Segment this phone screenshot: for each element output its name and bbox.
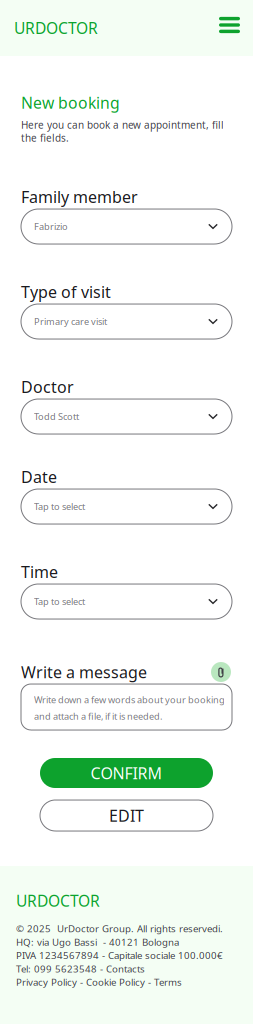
- button[interactable]: Fabrizio: [21, 209, 232, 244]
- staticText: Here you can book a new appointment, fil…: [21, 118, 224, 132]
- staticText: Todd Scott: [34, 410, 79, 423]
- staticText: Tel: 099 5623548 - Contacts: [16, 962, 145, 975]
- button[interactable]: URDOCTOR: [14, 17, 98, 39]
- staticText: Write a message: [21, 661, 147, 683]
- staticText: CONFIRM: [90, 762, 162, 784]
- button[interactable]: Primary care visit: [21, 304, 232, 339]
- staticText: Doctor: [21, 376, 74, 398]
- staticText: Write down a few words about your bookin…: [34, 693, 225, 706]
- staticText: Tap to select: [34, 595, 85, 608]
- staticText: Family member: [21, 186, 138, 208]
- button[interactable]: EDIT: [40, 800, 213, 831]
- button[interactable]: Tap to select: [21, 489, 232, 524]
- staticText: Date: [21, 466, 57, 488]
- staticText: New booking: [21, 92, 120, 113]
- staticText: URDOCTOR: [16, 890, 100, 911]
- staticText: PIVA 1234567894 - Capitale sociale 100.0…: [16, 949, 223, 962]
- button[interactable]: CONFIRM: [40, 758, 213, 788]
- staticText: EDIT: [109, 805, 144, 826]
- staticText: Tap to select: [34, 500, 85, 513]
- staticText: Primary care visit: [34, 315, 107, 328]
- button[interactable]: Tap to select: [21, 584, 232, 619]
- staticText: HQ: via Ugo Bassi - 40121 Bologna: [16, 935, 179, 949]
- button[interactable]: Todd Scott: [21, 399, 232, 434]
- button[interactable]: Privacy Policy - Cookie Policy - Terms: [16, 975, 182, 989]
- staticText: Type of visit: [21, 281, 111, 303]
- staticText: © 2025 UrDoctor Group. All rights reserv…: [16, 922, 223, 935]
- button[interactable]: URDOCTOR: [16, 890, 100, 906]
- staticText: Privacy Policy - Cookie Policy - Terms: [16, 975, 182, 989]
- staticText: URDOCTOR: [14, 17, 98, 39]
- staticText: the fields.: [21, 131, 69, 145]
- button[interactable]: Write down a few words about your bookin…: [21, 684, 232, 730]
- staticText: Time: [21, 561, 58, 583]
- staticText: and attach a file, if it is needed.: [34, 710, 162, 722]
- staticText: Fabrizio: [34, 220, 68, 233]
- button[interactable]: Menu: [215, 10, 244, 46]
- button[interactable]: Attach file: [210, 661, 232, 683]
